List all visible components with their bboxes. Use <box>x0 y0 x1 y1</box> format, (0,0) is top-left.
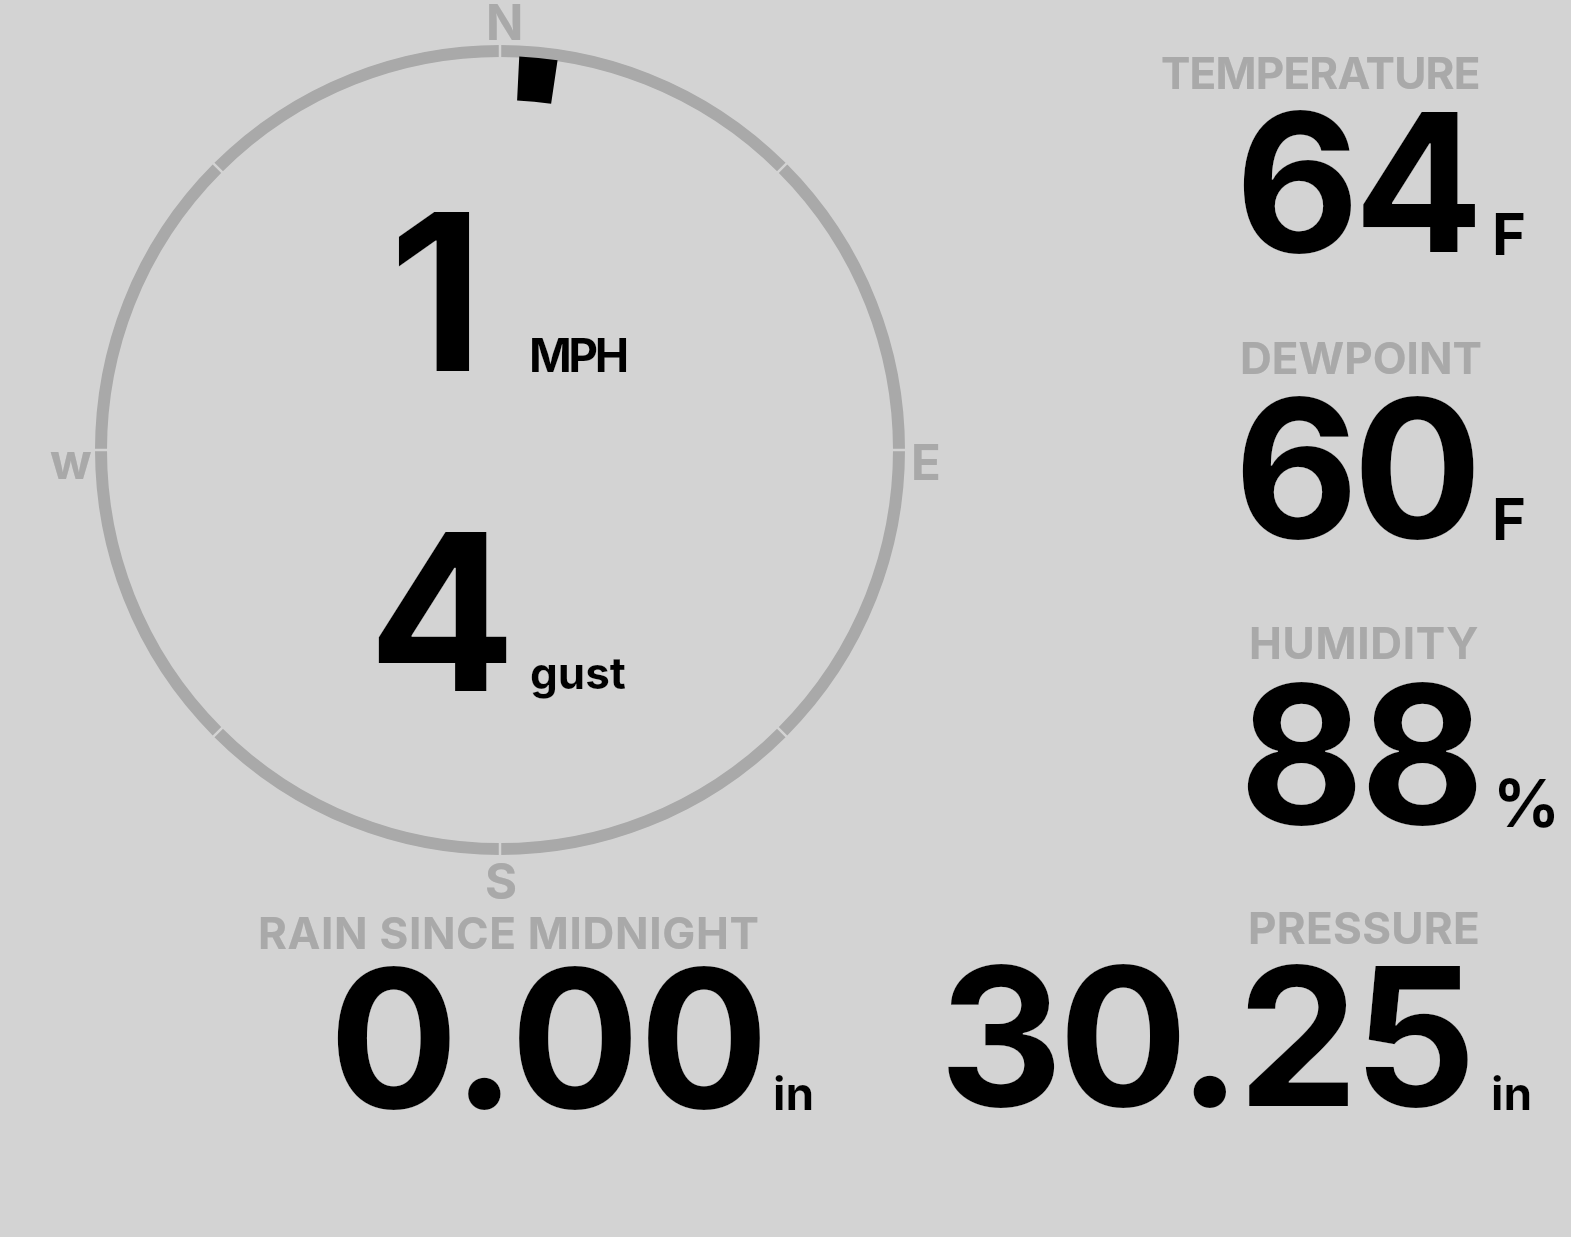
staticText: PRESSURE <box>1248 901 1480 954</box>
staticText: E <box>911 433 941 492</box>
staticText: in <box>773 1065 815 1121</box>
staticText: 88 <box>1239 638 1481 870</box>
staticText: % <box>1493 763 1561 843</box>
staticText: RAIN SINCE MIDNIGHT <box>258 906 760 959</box>
button[interactable]: Pressure 30.25 inches <box>920 895 1540 1125</box>
button[interactable]: Dew point 60 degrees Fahrenheit <box>1140 325 1560 555</box>
staticText: gust <box>530 646 626 699</box>
staticText: TEMPERATURE <box>1161 46 1480 99</box>
button[interactable]: Temperature 64 degrees Fahrenheit <box>1140 40 1560 270</box>
staticText: 0.00 <box>329 922 769 1154</box>
staticText: in <box>1491 1065 1533 1121</box>
staticText: S <box>485 852 518 911</box>
staticText: HUMIDITY <box>1249 616 1480 669</box>
staticText: MPH <box>529 327 626 383</box>
button[interactable]: Humidity 88 percent <box>1140 610 1560 840</box>
staticText: 60 <box>1234 352 1477 584</box>
button[interactable]: Rain since midnight 0.00 inches <box>240 900 840 1130</box>
staticText: F <box>1492 484 1527 554</box>
staticText: 1 <box>389 159 484 424</box>
staticText: DEWPOINT <box>1240 331 1482 384</box>
staticText: 30.25 <box>939 920 1473 1152</box>
staticText: 4 <box>368 479 517 744</box>
staticText: N <box>486 0 524 52</box>
staticText: F <box>1492 199 1527 269</box>
button[interactable]: Wind compass, 1 miles per hour, gusting … <box>95 45 905 855</box>
staticText: 64 <box>1235 66 1478 298</box>
staticText: w <box>50 432 92 491</box>
